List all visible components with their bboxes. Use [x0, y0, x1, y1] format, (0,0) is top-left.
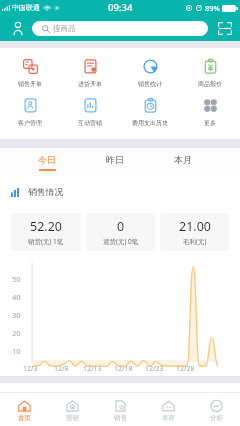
button[interactable]: Account	[8, 19, 27, 38]
staticText: 12/18	[114, 364, 133, 374]
staticText: 40	[12, 292, 21, 302]
button[interactable]: 昨日	[81, 148, 149, 176]
staticText: 销货(元) 1笔	[28, 237, 64, 246]
staticText: 20	[12, 328, 21, 338]
staticText: 12/8	[54, 364, 69, 374]
staticText: 今日	[38, 154, 56, 165]
staticText: 中国联通	[12, 3, 40, 12]
staticText: 09:34	[108, 1, 133, 14]
button[interactable]: 费用支出历史	[120, 98, 180, 127]
staticText: 销售	[114, 414, 127, 422]
staticText: 21.00	[179, 218, 211, 235]
button[interactable]: 客户管理	[0, 98, 60, 127]
button[interactable]: 今日	[13, 148, 81, 176]
button[interactable]: 21.00	[160, 213, 229, 251]
button[interactable]: 更多	[180, 98, 240, 127]
staticText: 费用支出历史	[132, 119, 168, 127]
staticText: 12/13	[83, 364, 102, 374]
button[interactable]: 商品报价	[180, 59, 240, 88]
staticText: 销售统计	[138, 80, 162, 88]
staticText: 50	[12, 274, 21, 284]
staticText: 10	[12, 346, 21, 356]
button[interactable]: 52.20	[11, 213, 81, 251]
staticText: 营销	[66, 414, 79, 422]
staticText: 商品报价	[198, 80, 222, 88]
staticText: 销售开单	[18, 80, 42, 88]
button[interactable]: 营销	[48, 393, 96, 426]
button[interactable]: 分析	[192, 393, 240, 426]
staticText: 客户管理	[18, 119, 42, 127]
button[interactable]: 销售开单	[0, 59, 60, 88]
staticText: 89%	[205, 3, 220, 13]
button[interactable]: 搜商品	[32, 21, 208, 36]
staticText: 昨日	[106, 154, 124, 165]
staticText: 退货(元) 0笔	[103, 237, 139, 246]
staticText: 毛利(元)	[183, 237, 207, 246]
staticText: 库存	[162, 414, 175, 422]
staticText: 12/3	[23, 364, 38, 374]
button[interactable]: 0	[86, 213, 155, 251]
button[interactable]: 进货开单	[60, 59, 120, 88]
staticText: 首页	[18, 414, 31, 422]
staticText: 更多	[204, 119, 216, 127]
button[interactable]: 销售统计	[120, 59, 180, 88]
button[interactable]: 首页	[0, 393, 48, 426]
button[interactable]: Scan	[215, 19, 234, 38]
staticText: 销售情况	[28, 187, 64, 198]
staticText: 0	[117, 218, 125, 235]
button[interactable]: 销售	[96, 393, 144, 426]
staticText: 进货开单	[78, 80, 102, 88]
staticText: 30	[12, 310, 21, 320]
staticText: 搜商品	[53, 24, 76, 33]
button[interactable]: 库存	[144, 393, 192, 426]
staticText: 12/23	[145, 364, 164, 374]
staticText: 本月	[174, 154, 192, 165]
staticText: 互动营销	[78, 119, 102, 127]
button[interactable]: 互动营销	[60, 98, 120, 127]
staticText: 52.20	[30, 218, 62, 235]
staticText: 分析	[210, 414, 223, 422]
button[interactable]: 本月	[149, 148, 217, 176]
staticText: 12/28	[176, 364, 195, 374]
